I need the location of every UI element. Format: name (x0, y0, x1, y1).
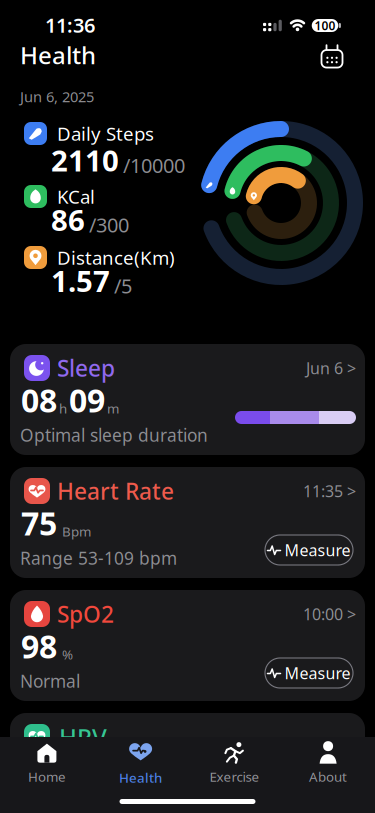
staticText: 11:36 (45, 12, 95, 38)
button[interactable]: Measure (265, 658, 353, 688)
staticText: Measure (284, 662, 350, 684)
staticText: Health (20, 39, 96, 71)
staticText: m (107, 399, 119, 417)
staticText: /10000 (123, 152, 185, 178)
staticText: % (59, 645, 73, 663)
staticText: h (59, 399, 67, 417)
staticText: 10:00 > (303, 603, 356, 625)
staticText: About (309, 768, 347, 785)
staticText: Sleep (57, 353, 115, 383)
button[interactable] (320, 44, 344, 68)
button[interactable]: Heart Rate (10, 467, 365, 578)
button[interactable]: SpO2 (10, 590, 365, 701)
button[interactable]: Health (94, 738, 187, 788)
staticText: Bpm (59, 522, 91, 540)
staticText: Range 53-109 bpm (20, 546, 177, 569)
staticText: Jun 6, 2025 (20, 87, 94, 106)
button[interactable]: HRV (10, 713, 365, 813)
button[interactable]: Measure (265, 535, 353, 565)
staticText: 1.57 (51, 261, 110, 300)
staticText: HRV (59, 721, 107, 753)
staticText: Jun 6 > (306, 357, 356, 379)
staticText: Optimal sleep duration (20, 423, 208, 446)
staticText: /5 (114, 272, 132, 299)
staticText: 100 (314, 17, 335, 33)
staticText: Measure (284, 539, 350, 561)
staticText: 2110 (51, 140, 119, 179)
staticText: Normal (20, 669, 80, 692)
button[interactable]: Exercise (188, 738, 281, 788)
staticText: KCal (57, 184, 95, 209)
button[interactable]: Home (0, 738, 93, 788)
button[interactable]: About (282, 738, 375, 788)
staticText: 98 (21, 625, 57, 667)
staticText: 86 (51, 200, 85, 239)
staticText: /300 (89, 211, 129, 238)
staticText: Distance(Km) (57, 245, 175, 270)
staticText: Heart Rate (57, 476, 174, 506)
staticText: SpO2 (57, 599, 114, 629)
staticText: 11:35 > (303, 480, 356, 502)
staticText: Health (119, 769, 162, 786)
button[interactable]: Sleep (10, 344, 365, 455)
staticText: Home (28, 768, 66, 785)
staticText: Exercise (209, 768, 259, 785)
staticText: Daily Steps (57, 121, 154, 146)
staticText: 75 (21, 502, 57, 544)
staticText: 08 (21, 379, 57, 421)
staticText: 09 (69, 379, 105, 421)
